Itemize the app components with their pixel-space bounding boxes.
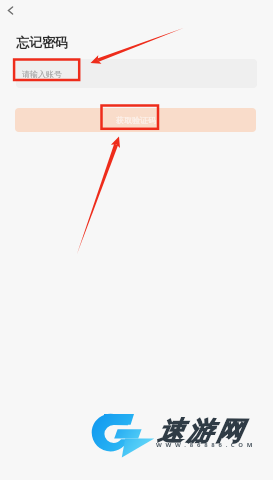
staticText: 请输入账号 <box>22 69 62 79</box>
button[interactable]: 请输入账号 <box>16 59 257 88</box>
staticText: 获取验证码 <box>116 115 156 125</box>
staticText: 速游网 <box>157 415 245 448</box>
staticText: 忘记密码 <box>16 34 68 50</box>
button[interactable]: 获取验证码 <box>15 108 256 132</box>
staticText: WWW.86886.COM <box>156 441 257 449</box>
button[interactable]: Back <box>0 0 21 21</box>
